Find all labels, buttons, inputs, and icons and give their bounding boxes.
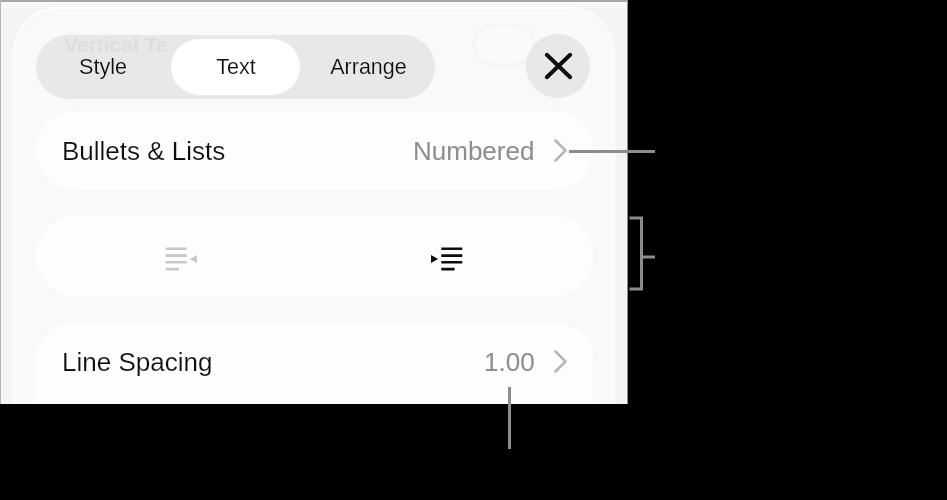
button[interactable]: Line Spacing: [36, 324, 593, 404]
button[interactable]: Text: [169, 35, 302, 99]
button[interactable]: Decrease indent: [109, 219, 254, 296]
staticText: Line Spacing: [62, 347, 213, 376]
button[interactable]: Close: [526, 34, 590, 98]
button[interactable]: Bullets & Lists: [36, 111, 593, 190]
button[interactable]: Style: [36, 35, 169, 99]
staticText: Numbered: [413, 136, 535, 165]
staticText: Vertical Te: [64, 35, 168, 56]
button[interactable]: Increase indent: [373, 219, 518, 296]
button[interactable]: Arrange: [302, 35, 435, 99]
staticText: 1.00: [484, 347, 535, 376]
staticText: Text: [216, 55, 256, 79]
staticText: Arrange: [330, 55, 407, 79]
staticText: Style: [79, 55, 127, 79]
staticText: Bullets & Lists: [62, 136, 226, 165]
